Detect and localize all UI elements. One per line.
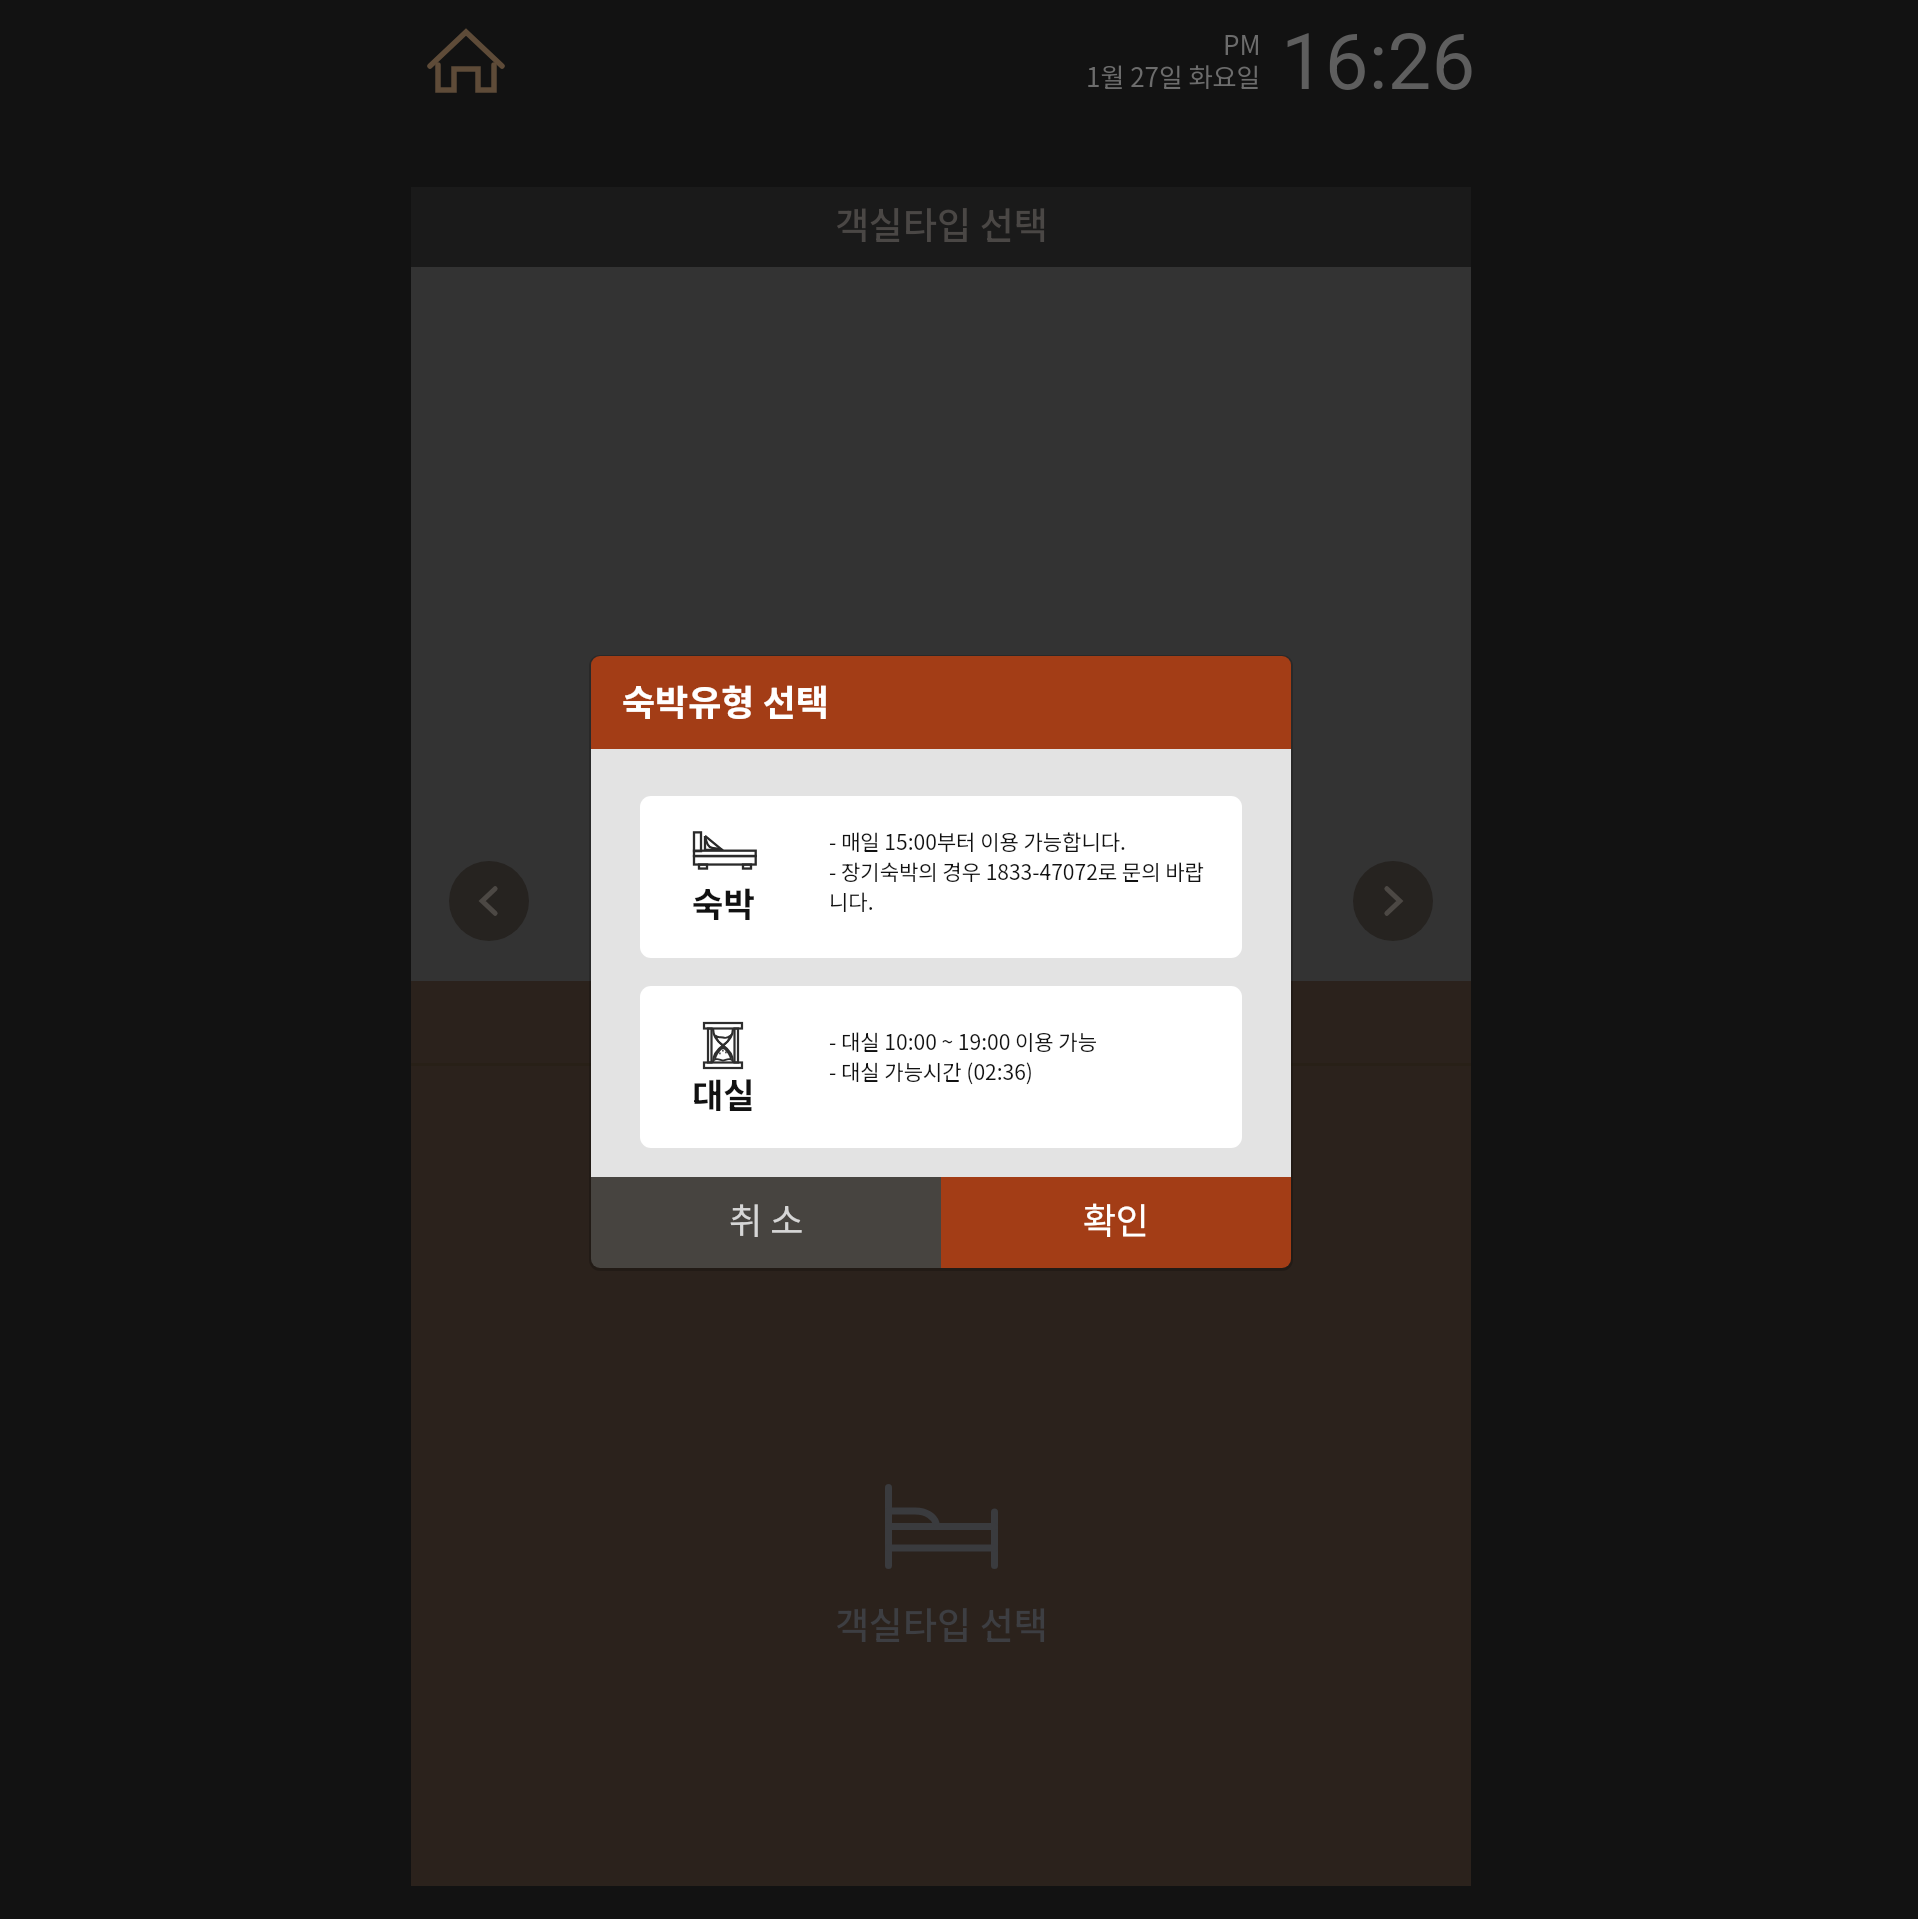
button[interactable]: 확인 xyxy=(941,1177,1291,1268)
button[interactable]: 숙박 xyxy=(640,796,1242,958)
button[interactable]: Next xyxy=(1353,861,1433,941)
staticText: 숙박유형 선택 xyxy=(622,674,829,726)
staticText: 대실 xyxy=(692,1069,755,1118)
staticText: PM xyxy=(1223,25,1261,63)
button[interactable]: Previous xyxy=(449,861,529,941)
staticText: 객실타입 선택 xyxy=(835,196,1048,250)
staticText: 1월 27일 화요일 xyxy=(1086,57,1261,95)
staticText: 취 소 xyxy=(729,1192,804,1244)
staticText: 객실타입 선택 xyxy=(835,1596,1048,1650)
staticText: 16:26 xyxy=(1281,17,1476,108)
staticText: - 매일 15:00부터 이용 가능합니다. - 장기숙박의 경우 1833-4… xyxy=(829,826,1204,916)
staticText: 숙박 xyxy=(692,878,755,927)
button[interactable]: 취 소 xyxy=(591,1177,941,1268)
staticText: - 대실 10:00 ~ 19:00 이용 가능 - 대실 가능시간 (02:3… xyxy=(829,1026,1098,1086)
button[interactable]: 대실 xyxy=(640,986,1242,1148)
button[interactable]: Home xyxy=(427,29,505,93)
staticText: 확인 xyxy=(1083,1192,1150,1244)
